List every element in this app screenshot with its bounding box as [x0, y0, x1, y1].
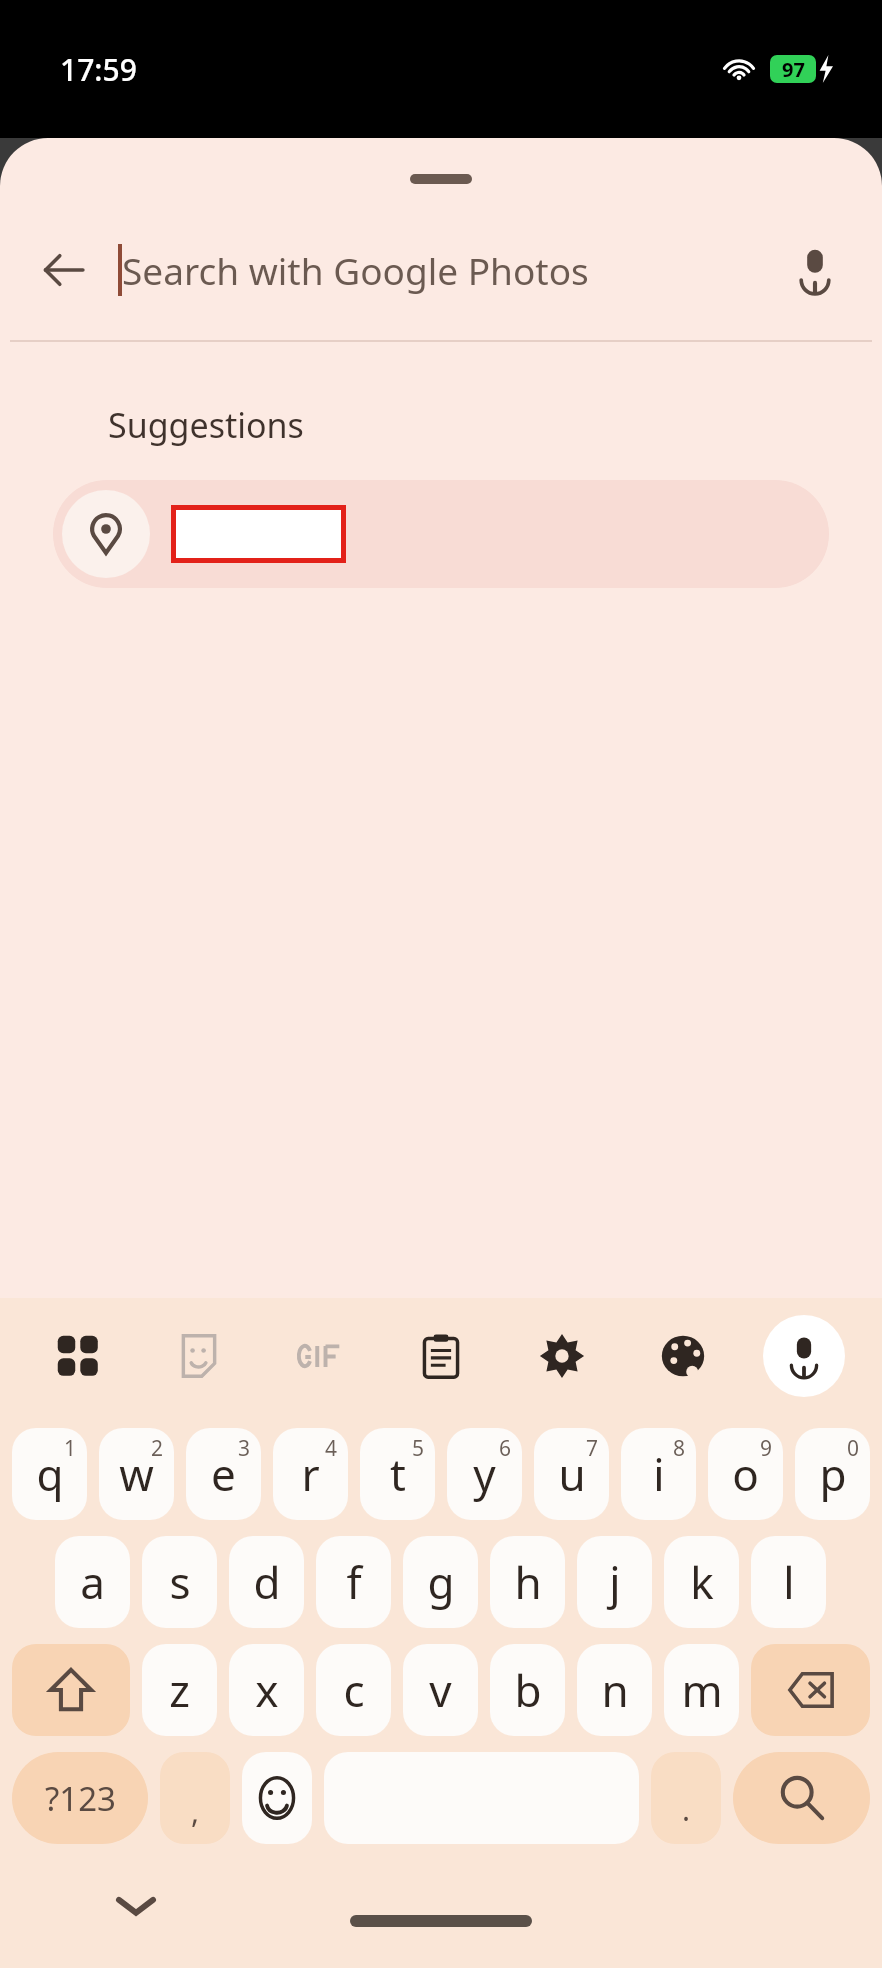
- button[interactable]: y: [447, 1428, 522, 1520]
- button[interactable]: Voice search: [776, 231, 854, 309]
- button[interactable]: w: [99, 1428, 174, 1520]
- staticText: d: [253, 1552, 281, 1612]
- staticText: n: [601, 1660, 629, 1720]
- staticText: 9: [760, 1434, 773, 1463]
- button[interactable]: Shift: [12, 1644, 130, 1736]
- button[interactable]: Search: [733, 1752, 870, 1844]
- button[interactable]: Space: [324, 1752, 639, 1844]
- staticText: m: [681, 1660, 723, 1720]
- button[interactable]: ,: [160, 1752, 230, 1844]
- staticText: 7: [586, 1434, 599, 1463]
- staticText: u: [558, 1444, 586, 1504]
- button[interactable]: f: [316, 1536, 391, 1628]
- button[interactable]: Back: [28, 234, 100, 306]
- staticText: 5: [412, 1434, 425, 1463]
- button[interactable]: l: [751, 1536, 826, 1628]
- button[interactable]: b: [490, 1644, 565, 1736]
- staticText: i: [653, 1444, 665, 1504]
- staticText: .: [682, 1789, 691, 1830]
- staticText: q: [36, 1444, 64, 1504]
- staticText: r: [301, 1444, 320, 1504]
- staticText: o: [732, 1444, 759, 1504]
- staticText: ,: [191, 1791, 200, 1832]
- button[interactable]: p: [795, 1428, 870, 1520]
- button[interactable]: Voice input: [763, 1315, 845, 1397]
- button[interactable]: u: [534, 1428, 609, 1520]
- staticText: b: [514, 1660, 542, 1720]
- button[interactable]: h: [490, 1536, 565, 1628]
- button[interactable]: Apps: [38, 1316, 118, 1396]
- staticText: 1: [64, 1434, 77, 1463]
- button[interactable]: Hide keyboard: [106, 1876, 166, 1936]
- staticText: 3: [238, 1434, 251, 1463]
- button[interactable]: v: [403, 1644, 478, 1736]
- staticText: j: [609, 1552, 621, 1612]
- button[interactable]: g: [403, 1536, 478, 1628]
- staticText: Search with Google Photos: [122, 245, 589, 295]
- staticText: s: [169, 1552, 191, 1612]
- button[interactable]: .: [651, 1752, 721, 1844]
- button[interactable]: e: [186, 1428, 261, 1520]
- staticText: x: [255, 1660, 279, 1720]
- staticText: 17:59: [60, 49, 137, 90]
- button[interactable]: Emoji: [242, 1752, 312, 1844]
- button[interactable]: c: [316, 1644, 391, 1736]
- staticText: w: [119, 1444, 154, 1504]
- button[interactable]: Settings: [522, 1316, 602, 1396]
- button[interactable]: o: [708, 1428, 783, 1520]
- staticText: 4: [325, 1434, 338, 1463]
- button[interactable]: x: [229, 1644, 304, 1736]
- button[interactable]: Stickers: [159, 1316, 239, 1396]
- button[interactable]: s: [142, 1536, 217, 1628]
- staticText: 0: [847, 1434, 860, 1463]
- staticText: f: [346, 1552, 362, 1612]
- button[interactable]: j: [577, 1536, 652, 1628]
- button[interactable]: t: [360, 1428, 435, 1520]
- staticText: y: [473, 1444, 496, 1504]
- staticText: p: [819, 1444, 847, 1504]
- staticText: a: [80, 1552, 105, 1612]
- button[interactable]: q: [12, 1428, 87, 1520]
- button[interactable]: z: [142, 1644, 217, 1736]
- staticText: Suggestions: [108, 402, 304, 448]
- staticText: h: [514, 1552, 542, 1612]
- button[interactable]: Backspace: [751, 1644, 870, 1736]
- staticText: 6: [499, 1434, 512, 1463]
- button[interactable]: a: [55, 1536, 130, 1628]
- button[interactable]: i: [621, 1428, 696, 1520]
- button[interactable]: Themes: [643, 1316, 723, 1396]
- button[interactable]: r: [273, 1428, 348, 1520]
- button[interactable]: n: [577, 1644, 652, 1736]
- button[interactable]: d: [229, 1536, 304, 1628]
- staticText: t: [390, 1444, 406, 1504]
- staticText: ?123: [45, 1776, 116, 1821]
- staticText: l: [783, 1552, 795, 1612]
- button[interactable]: [53, 480, 829, 588]
- button[interactable]: m: [664, 1644, 739, 1736]
- staticText: c: [343, 1660, 365, 1720]
- button[interactable]: GIF: [280, 1316, 360, 1396]
- button[interactable]: ?123: [12, 1752, 148, 1844]
- staticText: 2: [151, 1434, 164, 1463]
- button[interactable]: Clipboard: [401, 1316, 481, 1396]
- button[interactable]: k: [664, 1536, 739, 1628]
- staticText: k: [690, 1552, 714, 1612]
- staticText: e: [211, 1444, 236, 1504]
- staticText: v: [429, 1660, 452, 1720]
- staticText: 8: [673, 1434, 686, 1463]
- staticText: g: [427, 1552, 455, 1612]
- staticText: 97: [782, 56, 805, 83]
- staticText: z: [169, 1660, 190, 1720]
